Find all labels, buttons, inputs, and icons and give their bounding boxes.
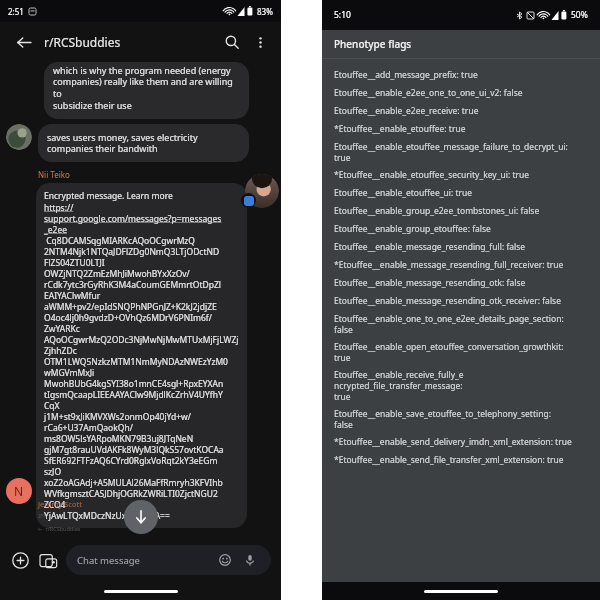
staticText: Chat message xyxy=(77,554,140,567)
button[interactable]: Etouffee__enable_save_etouffee_to_teleph… xyxy=(334,408,588,430)
button[interactable]: Gallery xyxy=(34,546,62,574)
button[interactable]: Etouffee__add_message_prefix: true xyxy=(334,69,588,81)
button[interactable]: *Etouffee__enable_message_resending_full… xyxy=(334,259,588,271)
staticText: Etouffee__enable_open_etouffee_conversat… xyxy=(334,341,564,363)
staticText: *Etouffee__enable_etouffee: true xyxy=(334,123,466,135)
staticText: ← r/RCSbuddies xyxy=(38,525,81,532)
staticText: 83% xyxy=(257,6,273,17)
staticText: which is why the program needed (energy … xyxy=(53,64,240,112)
button[interactable]: Etouffee__enable_e2ee_one_to_one_ui_v2: … xyxy=(334,87,588,99)
button[interactable]: Chat message xyxy=(77,545,260,575)
staticText: *Etouffee__enable_send_delivery_imdn_xml… xyxy=(334,436,572,448)
button[interactable]: saves users money, saves electricity com… xyxy=(47,131,240,155)
staticText: N xyxy=(14,483,24,499)
staticText: Etouffee__enable_receive_fully_e ncrypte… xyxy=(334,369,464,402)
button[interactable]: Etouffee__enable_receive_fully_e ncrypte… xyxy=(334,369,588,402)
button[interactable]: *Etouffee__enable_send_delivery_imdn_xml… xyxy=(334,436,588,448)
staticText: Phenotype flags xyxy=(334,37,412,51)
staticText: *Etouffee__enable_send_file_transfer_xml… xyxy=(334,454,564,466)
button[interactable]: Etouffee__enable_e2ee_receive: true xyxy=(334,105,588,117)
staticText: r/RCSbuddies xyxy=(44,34,121,50)
staticText: 2:51 xyxy=(8,6,24,17)
staticText: Etouffee__enable_message_resending_otk: … xyxy=(334,277,526,289)
button[interactable]: Scroll to bottom xyxy=(124,500,158,534)
staticText: 2??? xyxy=(38,513,48,520)
staticText: Etouffee__enable_e2ee_one_to_one_ui_v2: … xyxy=(334,87,523,99)
staticText: saves users money, saves electricity com… xyxy=(47,131,198,155)
button[interactable]: Etouffee__enable_group_etouffee: false xyxy=(334,223,588,235)
staticText: Etouffee__enable_one_to_one_e2ee_details… xyxy=(334,313,564,335)
button[interactable]: *Etouffee__enable_etouffee_security_key_… xyxy=(334,169,588,181)
button[interactable]: N xyxy=(6,478,32,504)
button[interactable]: *Etouffee__enable_etouffee: true xyxy=(334,123,588,135)
button[interactable]: Etouffee__enable_etouffee_message_failur… xyxy=(334,141,588,163)
staticText: Etouffee__add_message_prefix: true xyxy=(334,69,478,81)
staticText: *Etouffee__enable_message_resending_full… xyxy=(334,259,564,271)
button[interactable]: Etouffee__enable_message_resending_otk_r… xyxy=(334,295,588,307)
staticText: Etouffee__enable_e2ee_receive: true xyxy=(334,105,479,117)
staticText: Etouffee__enable_group_etouffee: false xyxy=(334,223,491,235)
button[interactable]: Emoji xyxy=(215,550,235,570)
staticText: Etouffee__enable_save_etouffee_to_teleph… xyxy=(334,408,551,430)
button[interactable]: *Etouffee__enable_send_file_transfer_xml… xyxy=(334,454,588,466)
staticText: 5:10 xyxy=(334,9,351,21)
button[interactable]: Search xyxy=(219,29,245,55)
button[interactable]: Etouffee__enable_message_resending_otk: … xyxy=(334,277,588,289)
staticText: Encrypted message. Learn more xyxy=(44,190,176,202)
button[interactable]: Etouffee__enable_one_to_one_e2ee_details… xyxy=(334,313,588,335)
button[interactable]: Etouffee__enable_message_resending_full:… xyxy=(334,241,588,253)
staticText: Etouffee__enable_message_resending_otk_r… xyxy=(334,295,561,307)
button[interactable]: Etouffee__enable_etouffee_ui: true xyxy=(334,187,588,199)
button[interactable]: which is why the program needed (energy … xyxy=(53,64,240,112)
staticText: Cq8DCAMSqgMIARKcAQoOCgwrMzQ 2NTM4Njk1NTQ… xyxy=(44,235,239,521)
button[interactable]: Back xyxy=(10,29,36,55)
staticText: Etouffee__enable_group_e2ee_tombstones_u… xyxy=(334,205,540,217)
button[interactable]: Encrypted message. Learn more xyxy=(44,190,239,521)
staticText: Etouffee__enable_etouffee_ui: true xyxy=(334,187,473,199)
staticText: 50% xyxy=(571,9,588,21)
staticText: Etouffee__enable_etouffee_message_failur… xyxy=(334,141,568,163)
staticText: https:// support.google.com/messages?p=m… xyxy=(44,202,222,235)
button[interactable]: Add attachment xyxy=(6,546,34,574)
button[interactable]: More options xyxy=(249,31,271,53)
staticText: Etouffee__enable_message_resending_full:… xyxy=(334,241,526,253)
staticText: *Etouffee__enable_etouffee_security_key_… xyxy=(334,169,530,181)
staticText: Nii Teiko xyxy=(38,169,70,180)
button[interactable]: Etouffee__enable_group_e2ee_tombstones_u… xyxy=(334,205,588,217)
button[interactable]: Etouffee__enable_open_etouffee_conversat… xyxy=(334,341,588,363)
staticText: Jeremy Scott xyxy=(38,499,82,509)
button[interactable]: Voice message xyxy=(240,550,260,570)
